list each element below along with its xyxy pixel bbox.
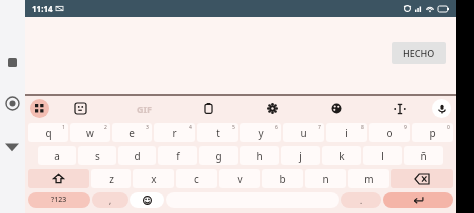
button[interactable]: GIF — [112, 103, 176, 115]
staticText: g — [215, 149, 222, 163]
button[interactable]: ?123 — [28, 192, 90, 208]
button[interactable]: w — [70, 123, 110, 142]
staticText: y — [258, 126, 264, 140]
button[interactable]: j — [281, 146, 320, 165]
button[interactable]: h — [240, 146, 279, 165]
staticText: e — [129, 126, 135, 140]
button[interactable]: Backspace — [391, 169, 453, 188]
staticText: a — [54, 149, 60, 163]
staticText: 3 — [146, 124, 149, 131]
staticText: 2 — [104, 124, 107, 131]
button[interactable]: Voice input — [432, 99, 451, 118]
button[interactable]: HECHO — [392, 42, 446, 64]
button[interactable]: d — [118, 146, 156, 165]
button[interactable]: t — [197, 123, 238, 142]
staticText: GIF — [137, 103, 152, 115]
staticText: 7 — [318, 124, 321, 131]
button[interactable]: Recents — [8, 58, 17, 67]
button[interactable]: Home — [5, 96, 20, 111]
staticText: 1 — [62, 124, 65, 131]
staticText: 4 — [189, 124, 192, 131]
button[interactable]: a — [38, 146, 76, 165]
staticText: HECHO — [403, 47, 435, 59]
button[interactable]: g — [199, 146, 238, 165]
button[interactable]: Clipboard — [176, 96, 240, 121]
staticText: 5 — [232, 124, 235, 131]
staticText: n — [322, 172, 329, 186]
button[interactable]: z — [91, 169, 131, 188]
button[interactable]: q — [28, 123, 68, 142]
button[interactable]: . — [341, 192, 381, 208]
button[interactable]: Themes — [304, 96, 368, 121]
button[interactable]: Back — [5, 140, 19, 154]
staticText: h — [256, 149, 263, 163]
button[interactable]: k — [322, 146, 361, 165]
button[interactable]: o — [369, 123, 410, 142]
button[interactable]: p — [412, 123, 453, 142]
button[interactable]: Stickers — [49, 96, 112, 121]
button[interactable]: i — [326, 123, 367, 142]
staticText: 9 — [404, 124, 407, 131]
staticText: u — [300, 126, 307, 140]
button[interactable]: Settings — [240, 96, 304, 121]
button[interactable]: Enter — [383, 192, 453, 208]
staticText: r — [172, 126, 177, 140]
button[interactable]: u — [283, 123, 324, 142]
button[interactable]: y — [240, 123, 281, 142]
staticText: m — [364, 172, 374, 186]
button[interactable]: ñ — [404, 146, 443, 165]
staticText: p — [429, 126, 436, 140]
staticText: c — [194, 172, 199, 186]
staticText: 11:14 — [32, 3, 53, 14]
staticText: 0 — [447, 124, 450, 131]
button[interactable]: l — [363, 146, 402, 165]
staticText: w — [86, 126, 94, 140]
staticText: j — [299, 149, 302, 163]
button[interactable]: r — [154, 123, 195, 142]
button[interactable]: e — [112, 123, 152, 142]
button[interactable]: m — [348, 169, 389, 188]
staticText: k — [339, 149, 345, 163]
staticText: d — [134, 149, 141, 163]
button[interactable]: c — [176, 169, 217, 188]
button[interactable]: f — [158, 146, 197, 165]
button[interactable]: x — [133, 169, 174, 188]
staticText: z — [109, 172, 114, 186]
staticText: b — [279, 172, 286, 186]
button[interactable]: b — [262, 169, 303, 188]
button[interactable]: v — [219, 169, 260, 188]
staticText: o — [386, 126, 393, 140]
button[interactable]: s — [78, 146, 116, 165]
button[interactable]: Emoji — [130, 192, 164, 208]
staticText: l — [381, 149, 384, 163]
button[interactable]: n — [305, 169, 346, 188]
staticText: , — [109, 195, 112, 206]
staticText: f — [176, 149, 180, 163]
staticText: t — [216, 126, 220, 140]
staticText: q — [45, 126, 52, 140]
staticText: 8 — [361, 124, 364, 131]
staticText: s — [95, 149, 100, 163]
button[interactable]: , — [92, 192, 128, 208]
button[interactable]: Text editing — [368, 96, 432, 121]
button[interactable]: Shift — [28, 169, 89, 188]
staticText: ñ — [420, 149, 427, 163]
staticText: v — [237, 172, 243, 186]
staticText: x — [151, 172, 157, 186]
button[interactable]: Apps — [30, 99, 49, 118]
staticText: ?123 — [51, 195, 67, 205]
staticText: 6 — [275, 124, 278, 131]
staticText: . — [360, 195, 363, 206]
staticText: i — [345, 126, 348, 140]
